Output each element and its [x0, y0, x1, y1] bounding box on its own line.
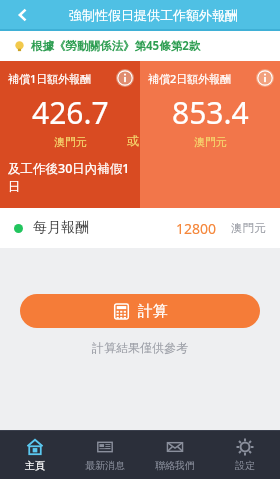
staticText: 及工作後30日內補假1日: [8, 160, 130, 194]
button[interactable]: Back: [0, 0, 46, 29]
staticText: 設定: [235, 459, 255, 472]
staticText: 12800: [176, 219, 217, 238]
staticText: 補償2日額外報酬: [148, 71, 256, 86]
staticText: 計算: [138, 302, 168, 321]
staticText: 澳門元: [54, 135, 87, 149]
staticText: 最新消息: [85, 459, 125, 472]
staticText: 根據《勞動關係法》第45條第2款: [31, 38, 201, 54]
button[interactable]: 主頁: [0, 431, 70, 479]
button[interactable]: 聯絡我們: [140, 431, 210, 479]
button[interactable]: 補償2日額外報酬: [140, 61, 280, 208]
staticText: 澳門元: [194, 135, 227, 149]
button[interactable]: 每月報酬: [0, 208, 280, 248]
button[interactable]: Info: [116, 69, 134, 87]
staticText: 每月報酬: [33, 219, 89, 237]
staticText: 426.7: [32, 92, 109, 133]
staticText: 強制性假日提供工作額外報酬: [69, 7, 238, 23]
button[interactable]: 補償1日額外報酬: [0, 61, 140, 208]
button[interactable]: 最新消息: [70, 431, 140, 479]
staticText: 或: [127, 133, 139, 148]
staticText: 澳門元: [231, 221, 266, 235]
button[interactable]: Info: [256, 69, 274, 87]
button[interactable]: 設定: [210, 431, 280, 479]
button[interactable]: 計算: [20, 294, 260, 328]
staticText: 聯絡我們: [155, 459, 195, 472]
staticText: 補償1日額外報酬: [8, 71, 116, 86]
staticText: 853.4: [172, 92, 249, 133]
staticText: 主頁: [25, 459, 45, 472]
staticText: 計算結果僅供參考: [0, 340, 280, 355]
